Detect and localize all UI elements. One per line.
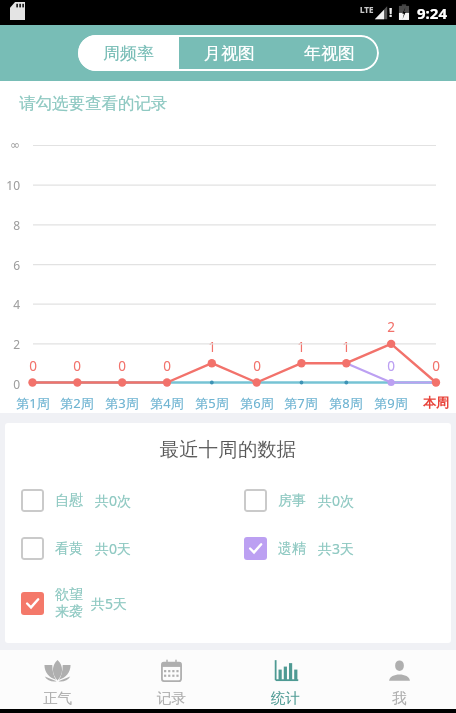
staticText: 共3天 [318, 539, 355, 558]
staticText: 第5周 [189, 394, 235, 412]
staticText: 房事 [278, 492, 307, 510]
staticText: 1 [291, 338, 311, 356]
staticText: 看黄 [55, 540, 84, 558]
staticText: 0 [426, 357, 446, 375]
staticText: 4 [0, 296, 20, 312]
staticText: 1 [202, 338, 222, 356]
staticText: 8 [0, 217, 20, 233]
staticText: 遗精 [278, 540, 307, 558]
button[interactable]: 看黄 [21, 537, 132, 560]
staticText: 2 [381, 318, 401, 336]
staticText: 0 [23, 357, 43, 375]
button[interactable]: 我 [342, 650, 456, 709]
staticText: 请勾选要查看的记录 [19, 93, 168, 114]
staticText: 最近十周的数据 [5, 437, 451, 462]
button[interactable]: 遗精 [244, 537, 355, 560]
staticText: 第3周 [99, 394, 145, 412]
staticText: 本周 [413, 394, 456, 410]
staticText: 0 [381, 357, 401, 375]
button[interactable]: 正气 [0, 650, 114, 709]
staticText: 第7周 [278, 394, 324, 412]
staticText: 自慰 [55, 492, 84, 510]
button[interactable]: 月视图 [179, 35, 279, 71]
staticText: 第6周 [234, 394, 280, 412]
staticText: 6 [0, 257, 20, 273]
staticText: ∞ [0, 138, 20, 152]
staticText: 9:24 [417, 3, 447, 23]
staticText: 第9周 [368, 394, 414, 412]
staticText: 2 [0, 336, 20, 352]
button[interactable]: 自慰 [21, 489, 132, 512]
button[interactable]: 记录 [114, 650, 228, 709]
staticText: 正气 [43, 689, 72, 707]
staticText: 0 [247, 357, 267, 375]
staticText: 记录 [157, 689, 186, 707]
staticText: 我 [392, 689, 407, 707]
staticText: 第2周 [54, 394, 100, 412]
staticText: 周频率 [103, 43, 154, 64]
staticText: 月视图 [204, 43, 255, 64]
staticText: LTE [360, 4, 374, 15]
button[interactable]: 房事 [244, 489, 355, 512]
staticText: 1 [336, 338, 356, 356]
staticText: 欲望 来袭 [55, 586, 87, 620]
staticText: 0 [112, 357, 132, 375]
staticText: 共0次 [318, 491, 355, 510]
staticText: 共5天 [91, 594, 128, 613]
staticText: 0 [157, 357, 177, 375]
staticText: 第8周 [323, 394, 369, 412]
staticText: 0 [0, 376, 20, 392]
staticText: 0 [67, 357, 87, 375]
staticText: 10 [0, 177, 20, 193]
staticText: 统计 [271, 689, 300, 707]
button[interactable]: 年视图 [279, 35, 379, 71]
button[interactable]: 周频率 [78, 35, 179, 71]
staticText: 年视图 [304, 43, 355, 64]
staticText: 第4周 [144, 394, 190, 412]
staticText: 共0天 [95, 539, 132, 558]
button[interactable]: 统计 [228, 650, 342, 709]
staticText: 第1周 [10, 394, 56, 412]
button[interactable]: 欲望 来袭 [21, 586, 128, 620]
staticText: 共0次 [95, 491, 132, 510]
staticText: ! [389, 4, 393, 20]
